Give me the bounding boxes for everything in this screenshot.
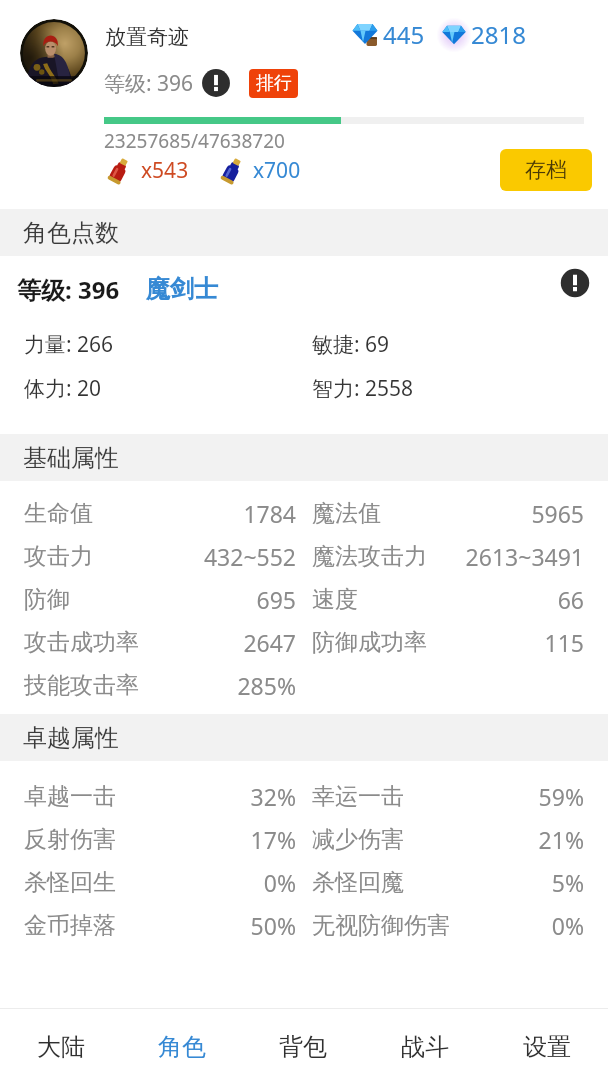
staticText: 金币掉落 [24,911,116,940]
staticText: 魔剑士 [146,274,218,304]
staticText: 32% [116,781,296,812]
staticText: 减少伤害 [312,825,404,854]
button[interactable]: Character info [559,267,591,299]
staticText: 等级: 396 [17,273,120,306]
staticText: 基础属性 [23,443,119,473]
staticText: 魔法值 [312,499,381,528]
staticText: 卓越属性 [23,723,119,753]
staticText: 2647 [139,627,296,658]
button[interactable]: 存档 [500,149,592,191]
staticText: 5965 [381,498,584,529]
staticText: 力量: 266 [24,330,114,359]
button[interactable]: 战斗 [364,1009,486,1080]
staticText: 0% [450,910,584,941]
staticText: 魔法攻击力 [312,542,427,571]
staticText: 50% [116,910,296,941]
staticText: 445 [383,18,425,51]
staticText: 432~552 [93,541,296,572]
staticText: 2613~3491 [427,541,584,572]
staticText: 杀怪回生 [24,868,116,897]
staticText: 角色点数 [23,218,119,248]
staticText: 速度 [312,585,358,614]
staticText: x700 [253,156,301,185]
staticText: 设置 [523,1032,571,1062]
button[interactable]: 大陆 [0,1009,121,1080]
staticText: 技能攻击率 [24,671,139,700]
button[interactable]: 角色 [121,1009,242,1080]
staticText: 战斗 [401,1032,449,1062]
staticText: 防御成功率 [312,628,427,657]
staticText: 2818 [471,18,526,51]
staticText: 66 [358,584,584,615]
staticText: 幸运一击 [312,782,404,811]
staticText: 反射伤害 [24,825,116,854]
staticText: 攻击成功率 [24,628,139,657]
staticText: 5% [404,867,584,898]
button[interactable]: Level info [201,68,231,98]
staticText: 695 [70,584,296,615]
staticText: 大陆 [37,1032,85,1062]
button[interactable]: Profile avatar [20,19,88,87]
button[interactable]: 背包 [242,1009,364,1080]
staticText: 115 [427,627,584,658]
staticText: x543 [141,156,189,185]
staticText: 17% [116,824,296,855]
staticText: 1784 [93,498,296,529]
staticText: 攻击力 [24,542,93,571]
staticText: 0% [116,867,296,898]
staticText: 23257685/47638720 [104,128,285,154]
staticText: 放置奇迹 [105,24,189,50]
staticText: 杀怪回魔 [312,868,404,897]
staticText: 无视防御伤害 [312,911,450,940]
button[interactable]: 设置 [486,1009,608,1080]
staticText: 体力: 20 [24,374,102,403]
staticText: 卓越一击 [24,782,116,811]
staticText: 等级: 396 [104,69,194,98]
button[interactable]: 排行 [249,69,298,98]
staticText: 防御 [24,585,70,614]
staticText: 智力: 2558 [312,374,414,403]
staticText: 排行 [256,72,292,95]
staticText: 敏捷: 69 [312,330,390,359]
staticText: 21% [404,824,584,855]
staticText: 存档 [525,157,567,183]
staticText: 角色 [158,1032,206,1062]
staticText: 背包 [279,1032,327,1062]
staticText: 59% [404,781,584,812]
staticText: 285% [139,670,296,701]
staticText: 生命值 [24,499,93,528]
